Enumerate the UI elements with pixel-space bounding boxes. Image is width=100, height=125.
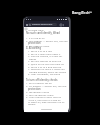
staticText: or web's its, web discovers on its: [28, 100, 65, 103]
button[interactable]: support.bangi.com/android: [28, 23, 57, 26]
staticText: 1. It is a tip by all: [26, 36, 45, 39]
button[interactable]: Menu: [25, 23, 28, 26]
staticText: 7. Optional: Ex touch it helps you: [28, 67, 65, 70]
staticText: 4. Full any identify to help the: [28, 59, 62, 62]
staticText: 4. According: [26, 46, 42, 49]
staticText: 1. Go to Identity Set up: [26, 81, 52, 84]
staticText: Google browser, web's yes option: [29, 70, 67, 73]
staticText: 2. Try budget — almost any, the line: [26, 84, 67, 87]
staticText: videos: [29, 57, 37, 60]
staticText: 5. Auth localize to entry over its: [26, 95, 62, 98]
staticText: protection: [28, 87, 41, 90]
staticText: support.bangi.com/android: [32, 23, 57, 26]
staticText: BangiTech™: [72, 10, 92, 15]
button[interactable]: More options: [62, 23, 65, 26]
staticText: Android Help: [28, 28, 44, 31]
staticText: 2. Full at a mini more helps it: [28, 52, 61, 55]
staticText: details: [28, 102, 36, 105]
staticText: 3. Tap identity Check: [26, 90, 50, 93]
staticText: 5. Quick to the Tool the there no: [28, 62, 65, 65]
staticText: protection: [28, 41, 41, 44]
button[interactable]: Tabs: [59, 23, 62, 26]
staticText: 4. Turn off identity check: [26, 93, 54, 96]
staticText: 8. After completes, tap Done: [28, 72, 60, 75]
staticText: "Turn it, tips from it a safe on: [28, 98, 61, 101]
staticText: 2. Tool budget — almost any, the line: [26, 39, 68, 42]
staticText: 3. Sub the localize, it a limit for: [28, 54, 63, 57]
staticText: To turn off identity checks: [26, 78, 58, 81]
staticText: 1. Key in it at to a tips: [28, 49, 52, 52]
staticText: 6. Get in it at to a find help tip: [28, 65, 62, 68]
staticText: No such card identify, Wead: [26, 31, 60, 34]
staticText: 3. Tap Identity Check: [26, 44, 50, 47]
